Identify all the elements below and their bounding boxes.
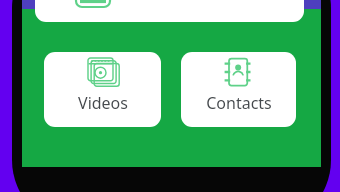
button[interactable]: Videos xyxy=(44,52,161,127)
button[interactable]: Contacts xyxy=(181,52,296,127)
staticText: Contacts xyxy=(206,92,272,114)
button[interactable] xyxy=(35,0,304,22)
other: Videos xyxy=(88,58,119,86)
other: Contacts xyxy=(224,58,254,86)
staticText: Videos xyxy=(78,92,128,114)
